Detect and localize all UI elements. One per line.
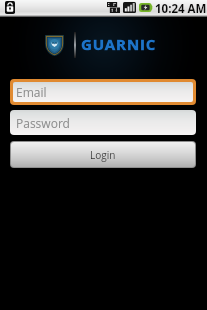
staticText: Password [16, 115, 70, 131]
button[interactable]: Login [11, 142, 195, 167]
button[interactable]: Password [10, 110, 196, 135]
staticText: Email [16, 84, 47, 100]
staticText: GUARNIC [81, 34, 157, 54]
staticText: Login [90, 148, 116, 162]
staticText: 10:24 AM [155, 1, 207, 17]
button[interactable]: Email [13, 82, 193, 102]
